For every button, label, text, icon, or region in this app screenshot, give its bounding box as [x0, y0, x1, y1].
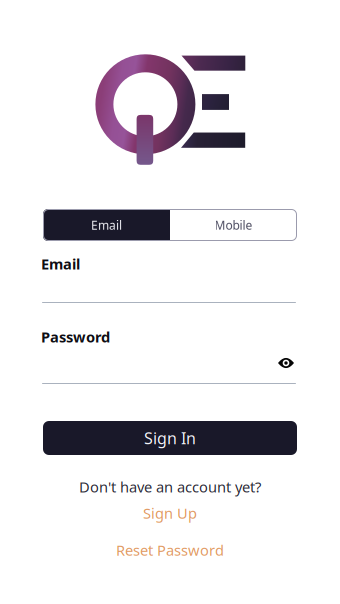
staticText: Don't have an account yet?	[79, 477, 261, 496]
staticText: Reset Password	[116, 540, 224, 560]
button[interactable]: Email	[43, 209, 170, 241]
staticText: Sign In	[144, 427, 196, 449]
staticText: Email	[41, 254, 80, 273]
button[interactable]: Sign In	[43, 421, 297, 455]
staticText: Email	[91, 217, 122, 233]
button[interactable]: Reset Password	[0, 540, 340, 560]
staticText: Sign Up	[143, 503, 197, 523]
button[interactable]: Show password	[269, 350, 303, 376]
button[interactable]: Mobile	[170, 209, 297, 241]
staticText: Password	[41, 327, 110, 346]
staticText: Mobile	[214, 217, 252, 233]
button[interactable]: Sign Up	[0, 503, 340, 523]
